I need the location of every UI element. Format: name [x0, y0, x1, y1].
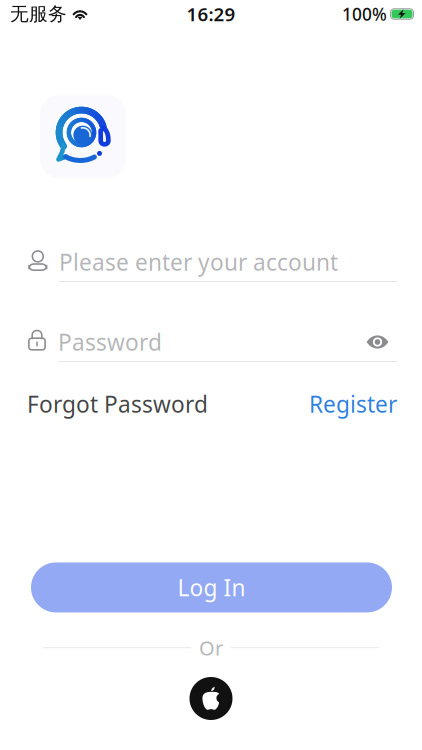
staticText: Password: [58, 327, 162, 357]
staticText: Or: [199, 634, 223, 661]
staticText: 16:29: [186, 2, 235, 26]
staticText: Register: [309, 389, 397, 419]
staticText: Log In: [177, 572, 245, 602]
staticText: Forgot Password: [27, 389, 208, 419]
staticText: 无服务: [10, 2, 67, 25]
staticText: 100%: [342, 2, 387, 25]
button[interactable]: Log In: [31, 562, 392, 612]
staticText: Please enter your account: [59, 247, 338, 277]
button[interactable]: Show password: [358, 330, 397, 354]
button[interactable]: Sign in with Apple: [189, 677, 232, 720]
button[interactable]: Forgot Password: [27, 389, 208, 419]
button[interactable]: Register: [309, 389, 397, 419]
